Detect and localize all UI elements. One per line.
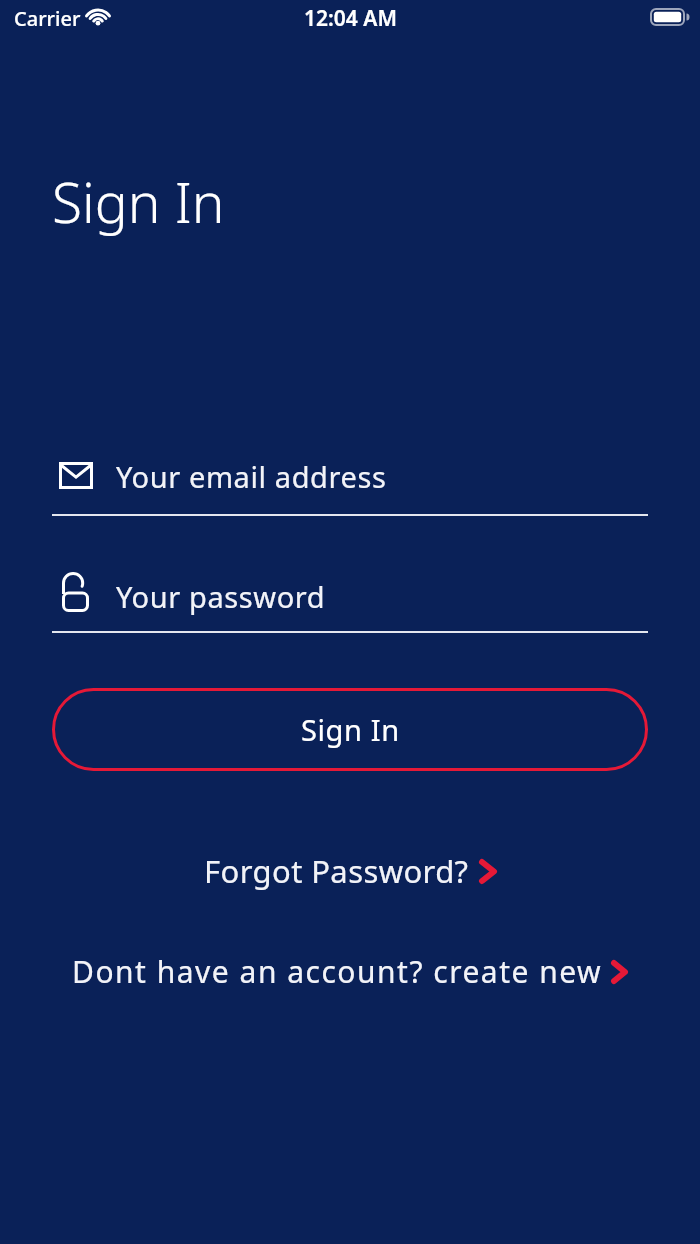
- staticText: Your email address: [116, 457, 387, 496]
- button[interactable]: Dont have an account? create new: [72, 951, 628, 992]
- staticText: Carrier: [14, 5, 81, 32]
- button[interactable]: Sign In: [52, 688, 648, 771]
- staticText: Sign In: [301, 710, 400, 749]
- staticText: Sign In: [52, 164, 225, 239]
- staticText: Your password: [116, 577, 326, 616]
- staticText: Dont have an account? create new: [72, 951, 603, 992]
- button[interactable]: Forgot Password?: [204, 850, 497, 892]
- staticText: 12:04 AM: [304, 4, 397, 33]
- staticText: Forgot Password?: [204, 850, 469, 892]
